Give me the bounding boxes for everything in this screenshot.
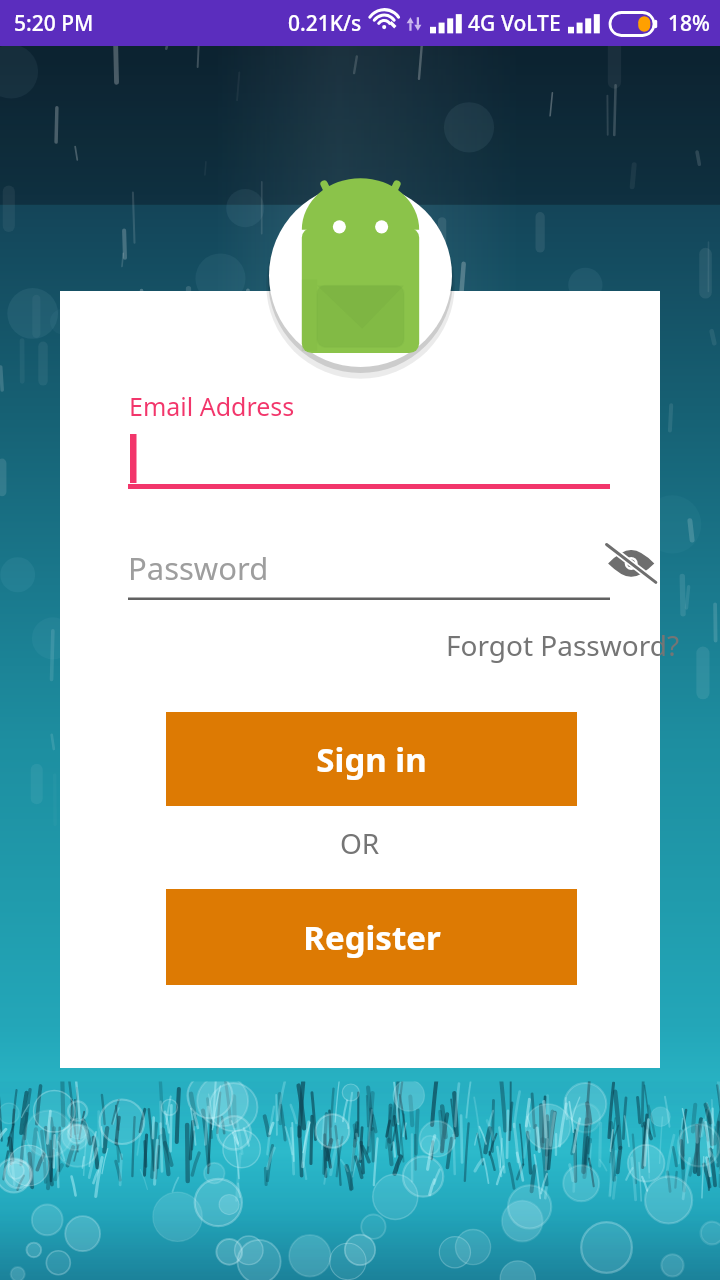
staticText: 4G (468, 9, 496, 38)
staticText: Email Address (129, 389, 295, 423)
staticText: VoLTE (501, 9, 561, 38)
staticText: OR (340, 824, 380, 862)
staticText: 0.21K/s (288, 9, 362, 38)
button[interactable]: Show password (600, 541, 660, 597)
staticText: 5:20 PM (14, 9, 94, 38)
staticText: Forgot Password? (446, 626, 680, 664)
button[interactable] (128, 431, 610, 489)
staticText: 18% (668, 9, 710, 38)
button[interactable]: Register (166, 889, 577, 985)
staticText: Register (303, 915, 441, 960)
button[interactable]: Forgot Password? (446, 626, 680, 664)
staticText: Password (128, 547, 269, 589)
staticText: Sign in (316, 737, 427, 782)
button[interactable]: Sign in (166, 712, 577, 806)
button[interactable]: Password (128, 543, 610, 600)
